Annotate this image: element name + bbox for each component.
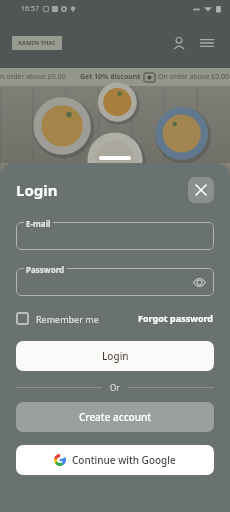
staticText: KAMIN THAI (18, 39, 56, 47)
staticText: Or (110, 382, 120, 393)
staticText: Continue with Google (72, 453, 176, 467)
staticText: Password (26, 264, 65, 275)
staticText: Login (102, 349, 129, 363)
staticText: Login (16, 180, 58, 200)
button[interactable]: Remember me (16, 312, 99, 325)
button[interactable]: Account (168, 32, 190, 54)
staticText: Kamin Thai (10, 161, 94, 181)
staticText: E-mail (26, 218, 51, 229)
staticText: On order above £0.00 (158, 72, 230, 82)
staticText: 16:57 (21, 4, 39, 14)
staticText: Remember me (36, 313, 99, 325)
button[interactable] (16, 268, 214, 296)
button[interactable]: Login (16, 341, 214, 371)
staticText: Get 10% discount (80, 72, 141, 82)
button[interactable]: KAMIN THAI (18, 39, 56, 47)
button[interactable]: Forgot password (138, 312, 214, 324)
staticText: Create account (79, 410, 152, 424)
button[interactable]: Close (188, 177, 214, 203)
button[interactable]: Menu (196, 32, 218, 54)
staticText: n order above £0.00 (0, 72, 66, 82)
button[interactable]: Continue with Google (16, 445, 214, 475)
button[interactable] (16, 222, 214, 250)
button[interactable]: Create account (16, 402, 214, 432)
button[interactable]: Show password (192, 275, 206, 289)
staticText: Forgot password (138, 312, 214, 324)
